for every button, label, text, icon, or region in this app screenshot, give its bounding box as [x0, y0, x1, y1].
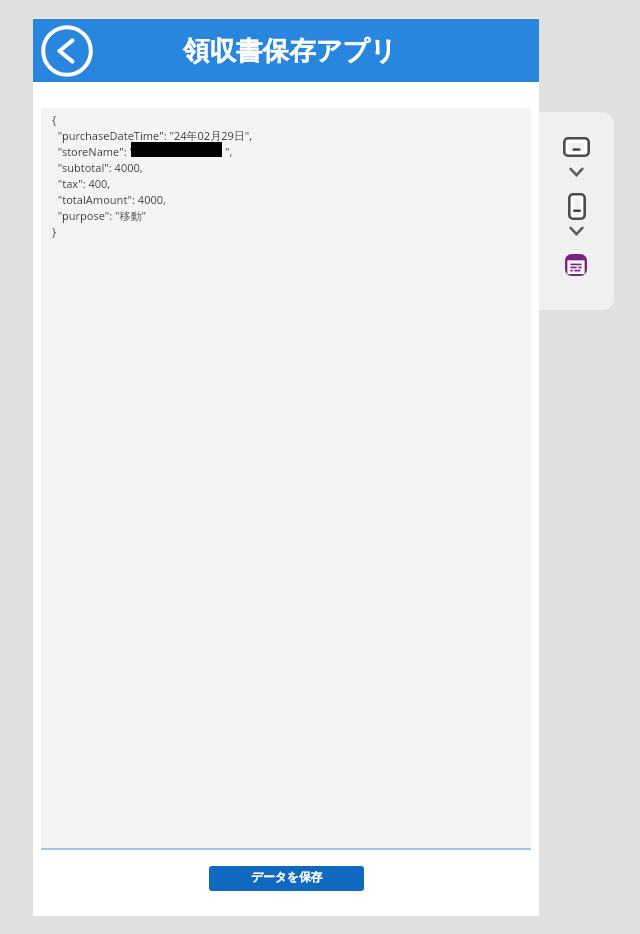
button[interactable]: { — [41, 108, 531, 848]
staticText: "tax": 400, — [52, 176, 111, 191]
staticText: "purchaseDateTime": "24年02月29日", — [52, 128, 253, 143]
button[interactable]: Expand phone sizes — [569, 226, 584, 236]
staticText: { — [52, 112, 57, 127]
staticText: "totalAmount": 4000, — [52, 192, 166, 207]
button[interactable]: Form fill — [565, 254, 587, 276]
button[interactable]: データを保存 — [209, 866, 364, 891]
staticText: データを保存 — [251, 870, 323, 885]
staticText: "subtotal": 4000, — [52, 160, 143, 175]
staticText: } — [52, 224, 57, 239]
staticText: "storeName": " — [52, 144, 134, 159]
staticText: "purpose": "移動" — [52, 208, 147, 223]
staticText: 領収書保存アプリ — [183, 34, 397, 67]
button[interactable]: Expand tablet sizes — [569, 167, 584, 177]
button[interactable]: Back — [39, 23, 95, 79]
button[interactable]: Tablet device — [563, 137, 590, 157]
staticText: ", — [225, 144, 233, 159]
button[interactable]: Phone device — [568, 193, 586, 220]
